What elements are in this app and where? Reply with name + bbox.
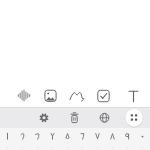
button[interactable]: [11, 84, 37, 107]
button[interactable]: [120, 128, 135, 150]
button[interactable]: [75, 128, 90, 150]
button[interactable]: [32, 108, 56, 128]
button[interactable]: [64, 84, 90, 107]
button[interactable]: [121, 84, 147, 107]
button[interactable]: [38, 84, 64, 107]
button[interactable]: [90, 128, 105, 150]
button[interactable]: [60, 128, 75, 150]
button[interactable]: [135, 128, 150, 150]
button[interactable]: [63, 108, 87, 128]
button[interactable]: [0, 128, 15, 150]
button[interactable]: [91, 84, 117, 107]
button[interactable]: [45, 128, 60, 150]
button[interactable]: [105, 128, 120, 150]
button[interactable]: [15, 128, 30, 150]
button[interactable]: [30, 128, 45, 150]
button[interactable]: [124, 107, 144, 128]
button[interactable]: [93, 108, 117, 128]
